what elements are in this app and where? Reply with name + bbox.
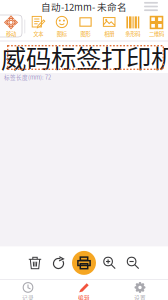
staticText: 标签长度(mm): 72 — [4, 73, 51, 81]
button[interactable]: 设置 — [112, 279, 168, 300]
button[interactable]: 条形码 — [122, 14, 143, 39]
staticText: 条形码 — [125, 30, 140, 38]
button[interactable]: Menu — [141, 0, 161, 13]
staticText: 移动 — [6, 30, 16, 38]
button[interactable]: Print — [72, 249, 96, 277]
button[interactable]: Zoom out — [123, 249, 143, 277]
button[interactable]: Zoom in — [99, 249, 119, 277]
staticText: 编辑 — [78, 293, 90, 300]
staticText: 自动-12mm- 未命名 — [41, 0, 127, 13]
button[interactable]: 编辑 — [56, 279, 112, 300]
button[interactable]: Redo — [48, 249, 68, 277]
staticText: 设置 — [134, 293, 146, 300]
staticText: 图标 — [57, 30, 67, 38]
button[interactable]: 文本 — [28, 14, 49, 39]
staticText: 文本 — [33, 30, 43, 38]
staticText: 相册 — [104, 30, 114, 38]
button[interactable]: 二维码 — [146, 14, 167, 39]
button[interactable]: 相册 — [99, 14, 120, 39]
button[interactable]: Delete — [25, 249, 45, 277]
staticText: 威码标签打印机 — [1, 39, 168, 75]
button[interactable]: 移动 — [0, 14, 21, 39]
button[interactable]: 图标 — [51, 14, 72, 39]
staticText: 二维码 — [149, 30, 164, 38]
button[interactable]: 记录 — [0, 279, 56, 300]
button[interactable]: 图形 — [75, 14, 96, 39]
staticText: 图形 — [80, 30, 90, 38]
staticText: 记录 — [22, 293, 34, 300]
